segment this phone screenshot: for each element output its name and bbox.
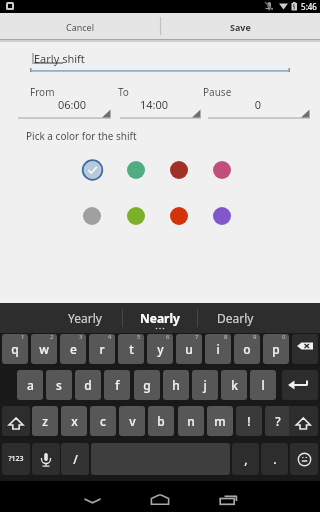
button[interactable]: h <box>163 370 189 400</box>
staticText: Early shift <box>34 51 114 70</box>
button[interactable]: a <box>17 370 43 400</box>
staticText: a <box>27 377 34 393</box>
button[interactable]: ?123 <box>2 443 30 475</box>
button[interactable]: t <box>118 334 144 364</box>
staticText: i <box>216 341 220 357</box>
staticText: o <box>243 341 251 357</box>
button[interactable] <box>170 207 188 225</box>
button[interactable]: / <box>61 443 89 475</box>
button[interactable] <box>290 443 318 475</box>
button[interactable]: , <box>232 443 259 475</box>
button[interactable]: Nearly <box>123 303 197 333</box>
button[interactable]: q <box>2 334 28 364</box>
button[interactable] <box>205 481 245 512</box>
button[interactable]: j <box>192 370 218 400</box>
staticText: z <box>42 413 48 429</box>
button[interactable]: Dearly <box>198 303 272 333</box>
button[interactable] <box>26 45 294 75</box>
button[interactable] <box>83 207 101 225</box>
staticText: Nearly <box>140 310 180 326</box>
button[interactable]: w <box>31 334 57 364</box>
staticText: 8 <box>224 334 228 341</box>
staticText: w <box>39 341 49 357</box>
staticText: ? <box>275 413 281 429</box>
button[interactable] <box>83 161 101 179</box>
staticText: 6 <box>166 334 170 341</box>
staticText: f <box>115 377 120 393</box>
button[interactable]: Cancel <box>0 13 160 40</box>
button[interactable]: o <box>234 334 260 364</box>
button[interactable]: k <box>221 370 247 400</box>
button[interactable] <box>170 161 188 179</box>
button[interactable] <box>292 334 318 364</box>
button[interactable]: s <box>46 370 72 400</box>
button[interactable] <box>289 406 318 436</box>
staticText: h <box>172 377 180 393</box>
button[interactable]: r <box>89 334 115 364</box>
button[interactable]: f <box>104 370 130 400</box>
button[interactable]: ! <box>236 406 262 436</box>
staticText: Cancel <box>66 21 95 33</box>
button[interactable] <box>140 481 180 512</box>
button[interactable] <box>73 481 113 512</box>
button[interactable]: b <box>148 406 174 436</box>
staticText: s <box>56 377 62 393</box>
button[interactable] <box>2 406 30 436</box>
staticText: 5:46 <box>298 1 320 17</box>
button[interactable]: Yearly <box>48 303 122 333</box>
staticText: 0 <box>282 334 286 341</box>
button[interactable]: v <box>119 406 145 436</box>
button[interactable] <box>18 97 111 119</box>
staticText: Save <box>230 21 251 33</box>
button[interactable]: . <box>261 443 288 475</box>
button[interactable]: Save <box>160 13 320 40</box>
staticText: b <box>157 413 165 429</box>
button[interactable] <box>282 370 318 400</box>
button[interactable] <box>127 161 145 179</box>
button[interactable] <box>213 161 231 179</box>
button[interactable]: u <box>176 334 202 364</box>
staticText: g <box>143 377 151 393</box>
staticText: n <box>187 413 195 429</box>
staticText: y <box>157 341 164 357</box>
button[interactable]: y <box>147 334 173 364</box>
button[interactable]: i <box>205 334 231 364</box>
staticText: ! <box>247 413 251 429</box>
button[interactable]: x <box>61 406 87 436</box>
button[interactable]: p <box>263 334 289 364</box>
staticText: 4 <box>108 334 112 341</box>
staticText: . <box>273 451 277 467</box>
staticText: v <box>129 413 136 429</box>
button[interactable]: m <box>207 406 233 436</box>
button[interactable] <box>213 207 231 225</box>
button[interactable]: l <box>250 370 276 400</box>
staticText: To <box>118 85 158 103</box>
staticText: 7 <box>195 334 199 341</box>
staticText: 1 <box>21 334 25 341</box>
staticText: Yearly <box>68 310 102 326</box>
staticText: / <box>73 451 78 467</box>
button[interactable] <box>32 443 60 475</box>
button[interactable]: c <box>90 406 116 436</box>
button[interactable] <box>120 97 201 119</box>
staticText: 3 <box>79 334 83 341</box>
staticText: 0 <box>228 97 288 116</box>
button[interactable]: d <box>75 370 101 400</box>
staticText: d <box>84 377 92 393</box>
button[interactable]: ? <box>265 406 291 436</box>
staticText: , <box>244 451 248 467</box>
button[interactable]: z <box>32 406 58 436</box>
button[interactable] <box>208 97 310 119</box>
button[interactable]: e <box>60 334 86 364</box>
staticText: l <box>261 377 265 393</box>
staticText: k <box>231 377 238 393</box>
button[interactable]: g <box>134 370 160 400</box>
staticText: q <box>11 341 19 357</box>
button[interactable]: n <box>178 406 204 436</box>
staticText: 14:00 <box>124 97 184 116</box>
button[interactable] <box>127 207 145 225</box>
staticText: m <box>214 413 226 429</box>
staticText: Pause <box>203 85 243 103</box>
staticText: t <box>129 341 134 357</box>
